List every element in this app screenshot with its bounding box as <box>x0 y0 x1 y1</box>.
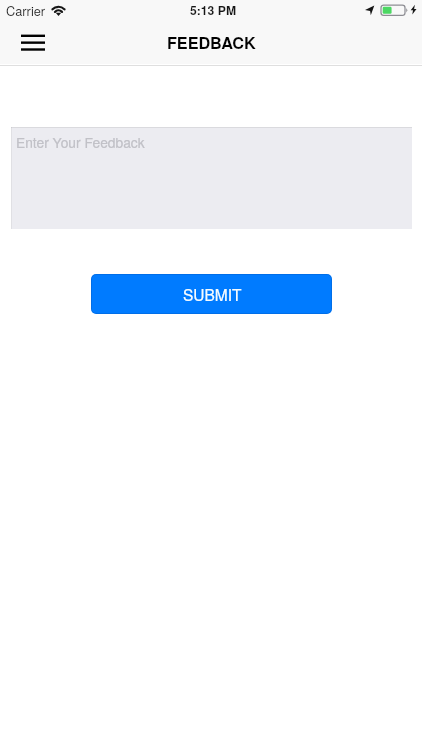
staticText: Enter Your Feedback <box>16 132 145 152</box>
staticText: FEEDBACK <box>167 31 256 54</box>
staticText: Carrier <box>6 1 46 19</box>
button[interactable]: Enter Your Feedback <box>11 127 412 229</box>
staticText: 5:13 PM <box>190 1 237 18</box>
button[interactable]: Open navigation menu <box>10 26 56 60</box>
button[interactable]: SUBMIT <box>91 274 332 314</box>
staticText: SUBMIT <box>183 283 242 305</box>
